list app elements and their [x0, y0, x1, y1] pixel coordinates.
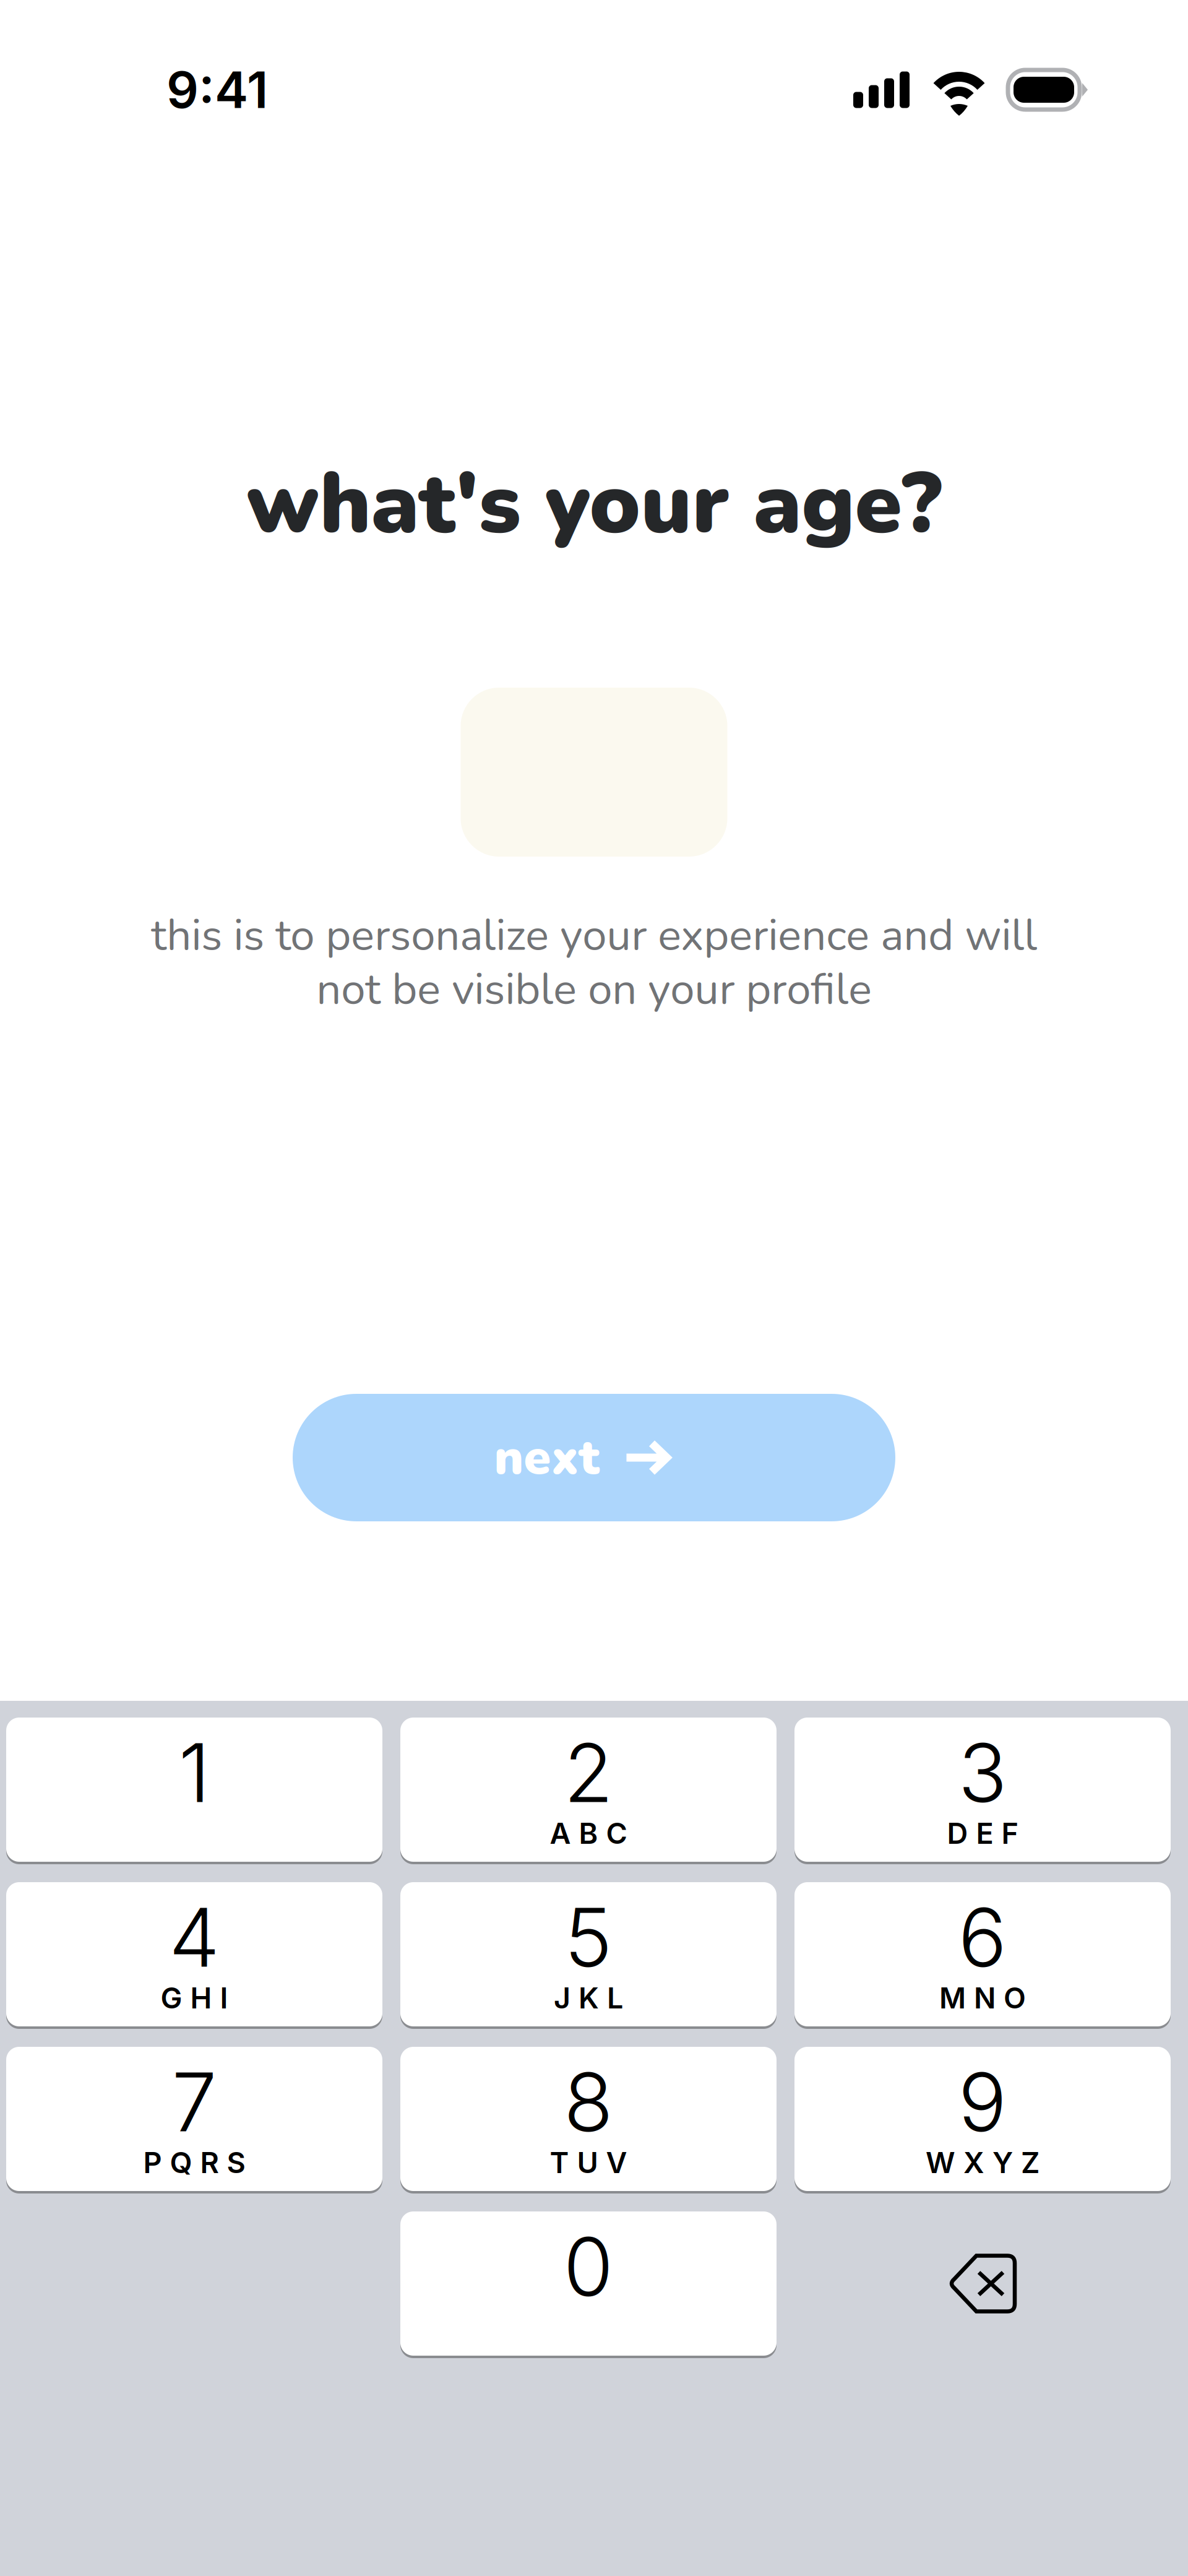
staticText: 9	[958, 2053, 1007, 2151]
button[interactable]: next	[293, 1394, 895, 1521]
staticText: WXYZ	[926, 2145, 1039, 2180]
button[interactable]: 5	[400, 1882, 777, 2026]
staticText: 4	[169, 1888, 220, 1986]
button[interactable]: 3	[794, 1718, 1171, 1862]
staticText: JKL	[554, 1980, 623, 2015]
staticText: DEF	[947, 1816, 1018, 1851]
staticText: 9:41	[166, 59, 268, 120]
staticText: what's your age?	[246, 446, 942, 562]
staticText: TUV	[550, 2145, 627, 2180]
button[interactable]: 4	[6, 1882, 382, 2026]
button[interactable]: 2	[400, 1718, 777, 1862]
button[interactable]: 1	[6, 1718, 382, 1862]
staticText: MNO	[939, 1980, 1026, 2015]
staticText: 6	[958, 1888, 1007, 1986]
staticText: ABC	[550, 1816, 627, 1851]
button[interactable]: 0	[400, 2211, 777, 2356]
staticText: this is to personalize your experience a…	[151, 905, 1037, 1019]
staticText: 3	[958, 1724, 1007, 1822]
staticText: GHI	[161, 1980, 228, 2015]
button[interactable]: 9	[794, 2047, 1171, 2191]
button[interactable]: 8	[400, 2047, 777, 2191]
staticText: 7	[172, 2053, 217, 2151]
staticText: 0	[563, 2218, 613, 2315]
staticText: PQRS	[143, 2145, 245, 2180]
staticText: 1	[179, 1724, 210, 1822]
staticText: next	[494, 1424, 600, 1491]
staticText: 2	[564, 1724, 613, 1822]
button[interactable]: 6	[794, 1882, 1171, 2026]
button[interactable]: Delete	[794, 2211, 1171, 2356]
staticText: 5	[564, 1888, 613, 1986]
button[interactable]: 7	[6, 2047, 382, 2191]
staticText: 8	[564, 2053, 613, 2151]
